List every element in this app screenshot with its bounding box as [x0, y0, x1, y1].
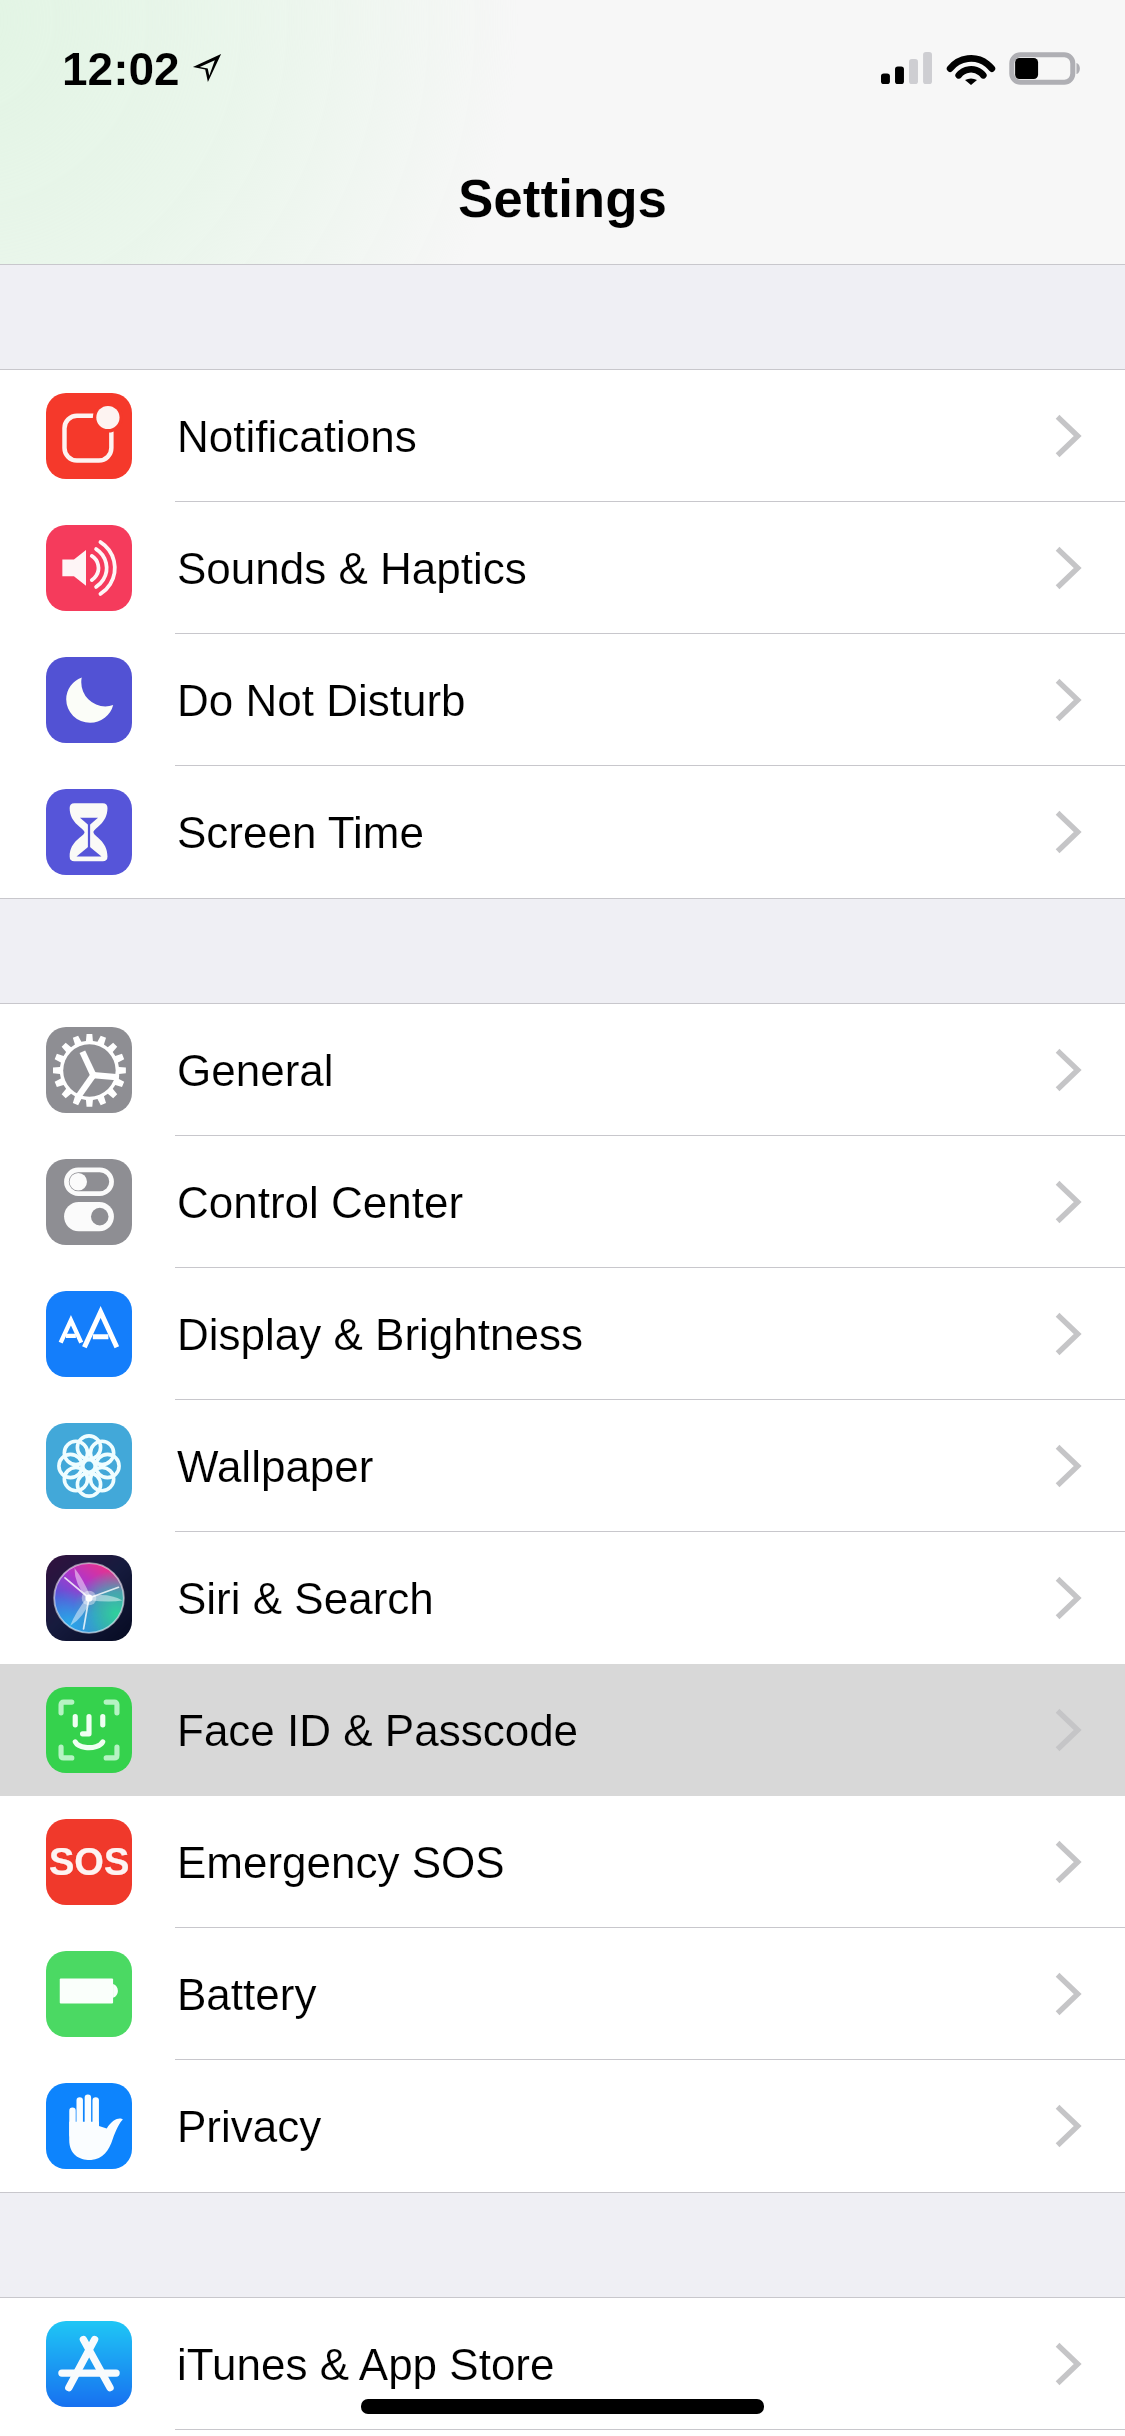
staticText: Do Not Disturb — [177, 676, 466, 725]
staticText: Notifications — [177, 412, 417, 461]
button[interactable]: iTunes & App Store — [0, 2298, 1125, 2430]
other: Cellular signal strength — [881, 52, 932, 84]
button[interactable]: Wallpaper — [0, 1400, 1125, 1532]
button[interactable]: General — [0, 1004, 1125, 1136]
other: Battery level — [1009, 52, 1081, 85]
staticText: 12:02 — [62, 43, 180, 94]
button[interactable]: Screen Time — [0, 766, 1125, 898]
staticText: Emergency SOS — [177, 1838, 505, 1887]
other: Location services active — [192, 53, 222, 83]
button[interactable]: Siri & Search — [0, 1532, 1125, 1664]
staticText: iTunes & App Store — [177, 2340, 555, 2389]
button[interactable]: Face ID & Passcode — [0, 1664, 1125, 1796]
button[interactable]: Display & Brightness — [0, 1268, 1125, 1400]
staticText: Face ID & Passcode — [177, 1706, 579, 1755]
staticText: Screen Time — [177, 808, 424, 857]
staticText: Display & Brightness — [177, 1310, 583, 1359]
button[interactable]: Do Not Disturb — [0, 634, 1125, 766]
staticText: Sounds & Haptics — [177, 544, 527, 593]
other: Wi-Fi connected — [949, 52, 993, 85]
button[interactable]: Privacy — [0, 2060, 1125, 2192]
staticText: General — [177, 1046, 334, 1095]
staticText: Wallpaper — [177, 1442, 374, 1491]
button[interactable]: Notifications — [0, 370, 1125, 502]
staticText: Privacy — [177, 2102, 322, 2151]
staticText: Battery — [177, 1970, 317, 2019]
staticText: Settings — [458, 169, 668, 228]
button[interactable]: Battery — [0, 1928, 1125, 2060]
button[interactable]: SOS — [0, 1796, 1125, 1928]
staticText: Control Center — [177, 1178, 464, 1227]
button[interactable]: Sounds & Haptics — [0, 502, 1125, 634]
button[interactable]: Control Center — [0, 1136, 1125, 1268]
staticText: Siri & Search — [177, 1574, 434, 1623]
staticText: SOS — [49, 1841, 130, 1883]
